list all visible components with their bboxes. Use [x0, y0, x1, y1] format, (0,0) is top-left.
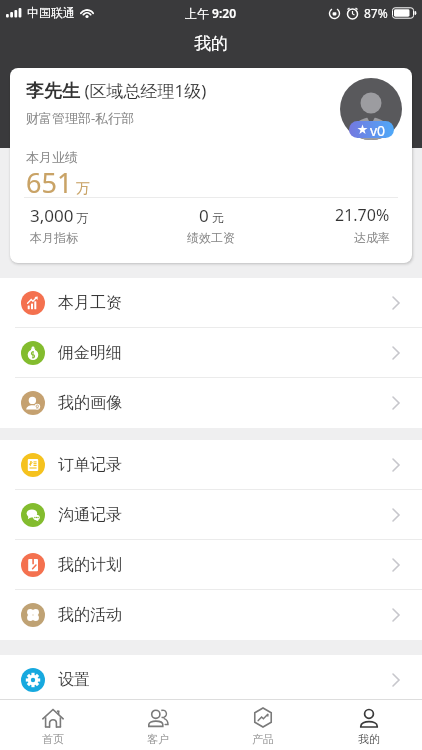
staticText: v0	[370, 121, 386, 138]
staticText: 我的计划	[58, 555, 392, 575]
staticText: 本月业绩	[26, 149, 78, 165]
button[interactable]: 设置	[0, 655, 422, 705]
button[interactable]: 李先生 (区域总经理1级)	[10, 68, 412, 263]
staticText: 我的活动	[58, 605, 392, 625]
button[interactable]: 沟通记录	[0, 490, 422, 540]
staticText: 我的	[358, 732, 380, 746]
staticText: 我的	[194, 33, 228, 54]
staticText: 达成率	[354, 230, 390, 245]
staticText: 中国联通	[27, 5, 75, 20]
button[interactable]: 佣金明细	[0, 328, 422, 378]
staticText: 本月指标	[30, 230, 78, 245]
staticText: 产品	[252, 732, 274, 746]
staticText: 财富管理部-私行部	[26, 109, 135, 127]
staticText: 首页	[42, 732, 64, 746]
button[interactable]: 我的	[316, 700, 422, 750]
staticText: 沟通记录	[58, 505, 392, 525]
staticText: 我的画像	[58, 393, 392, 413]
button[interactable]: 我的画像	[0, 378, 422, 428]
button[interactable]: 本月工资	[0, 278, 422, 328]
staticText: 3,000 万	[30, 204, 89, 227]
button[interactable]: 客户	[105, 700, 210, 750]
button[interactable]: 产品	[210, 700, 316, 750]
staticText: 订单记录	[58, 455, 392, 475]
staticText: 设置	[58, 670, 392, 690]
staticText: 21.70%	[335, 204, 390, 226]
staticText: 绩效工资	[187, 230, 235, 245]
button[interactable]: 我的计划	[0, 540, 422, 590]
staticText: 客户	[147, 732, 169, 746]
staticText: 本月工资	[58, 293, 392, 313]
staticText: 651 万	[26, 164, 90, 201]
button[interactable]: 订单记录	[0, 440, 422, 490]
staticText: 上午 9:20	[185, 5, 237, 21]
staticText: 佣金明细	[58, 343, 392, 363]
staticText: 0 元	[199, 204, 224, 227]
button[interactable]: 首页	[0, 700, 105, 750]
staticText: 李先生 (区域总经理1级)	[26, 79, 207, 103]
staticText: 87%	[364, 5, 388, 21]
button[interactable]: 我的活动	[0, 590, 422, 640]
